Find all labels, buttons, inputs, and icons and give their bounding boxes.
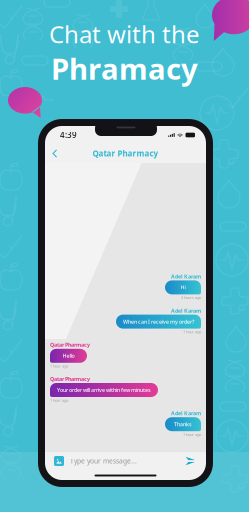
staticText: 4:39	[60, 130, 77, 140]
staticText: Thanks	[174, 421, 192, 428]
staticText: Phramacy	[51, 49, 198, 88]
staticText: Qatar Pharmacy	[92, 148, 158, 159]
staticText: 1 hour ago	[50, 363, 68, 369]
staticText: Chat with the	[49, 18, 200, 50]
staticText: When can I receive my order?	[123, 318, 194, 325]
staticText: Qatar Pharmacy	[50, 341, 90, 348]
button[interactable]: Send	[183, 455, 197, 467]
staticText: 1 hour ago	[183, 329, 201, 334]
button[interactable]: Back	[49, 146, 61, 161]
staticText: 1 hour ago	[50, 397, 68, 403]
staticText: Qatar Pharmacy	[50, 375, 90, 382]
staticText: 1 hour ago	[183, 432, 201, 437]
staticText: Adel Karam	[171, 273, 201, 280]
button[interactable]: Attach photo	[52, 454, 66, 468]
staticText: Adel Karam	[171, 410, 201, 417]
staticText: Type your message...	[70, 457, 137, 465]
staticText: Hello	[62, 352, 74, 359]
staticText: Hi	[180, 284, 185, 291]
staticText: Your order will arrive within few minute…	[57, 386, 151, 394]
staticText: Adel Karam	[171, 307, 201, 314]
staticText: 2 hours ago	[181, 295, 201, 300]
